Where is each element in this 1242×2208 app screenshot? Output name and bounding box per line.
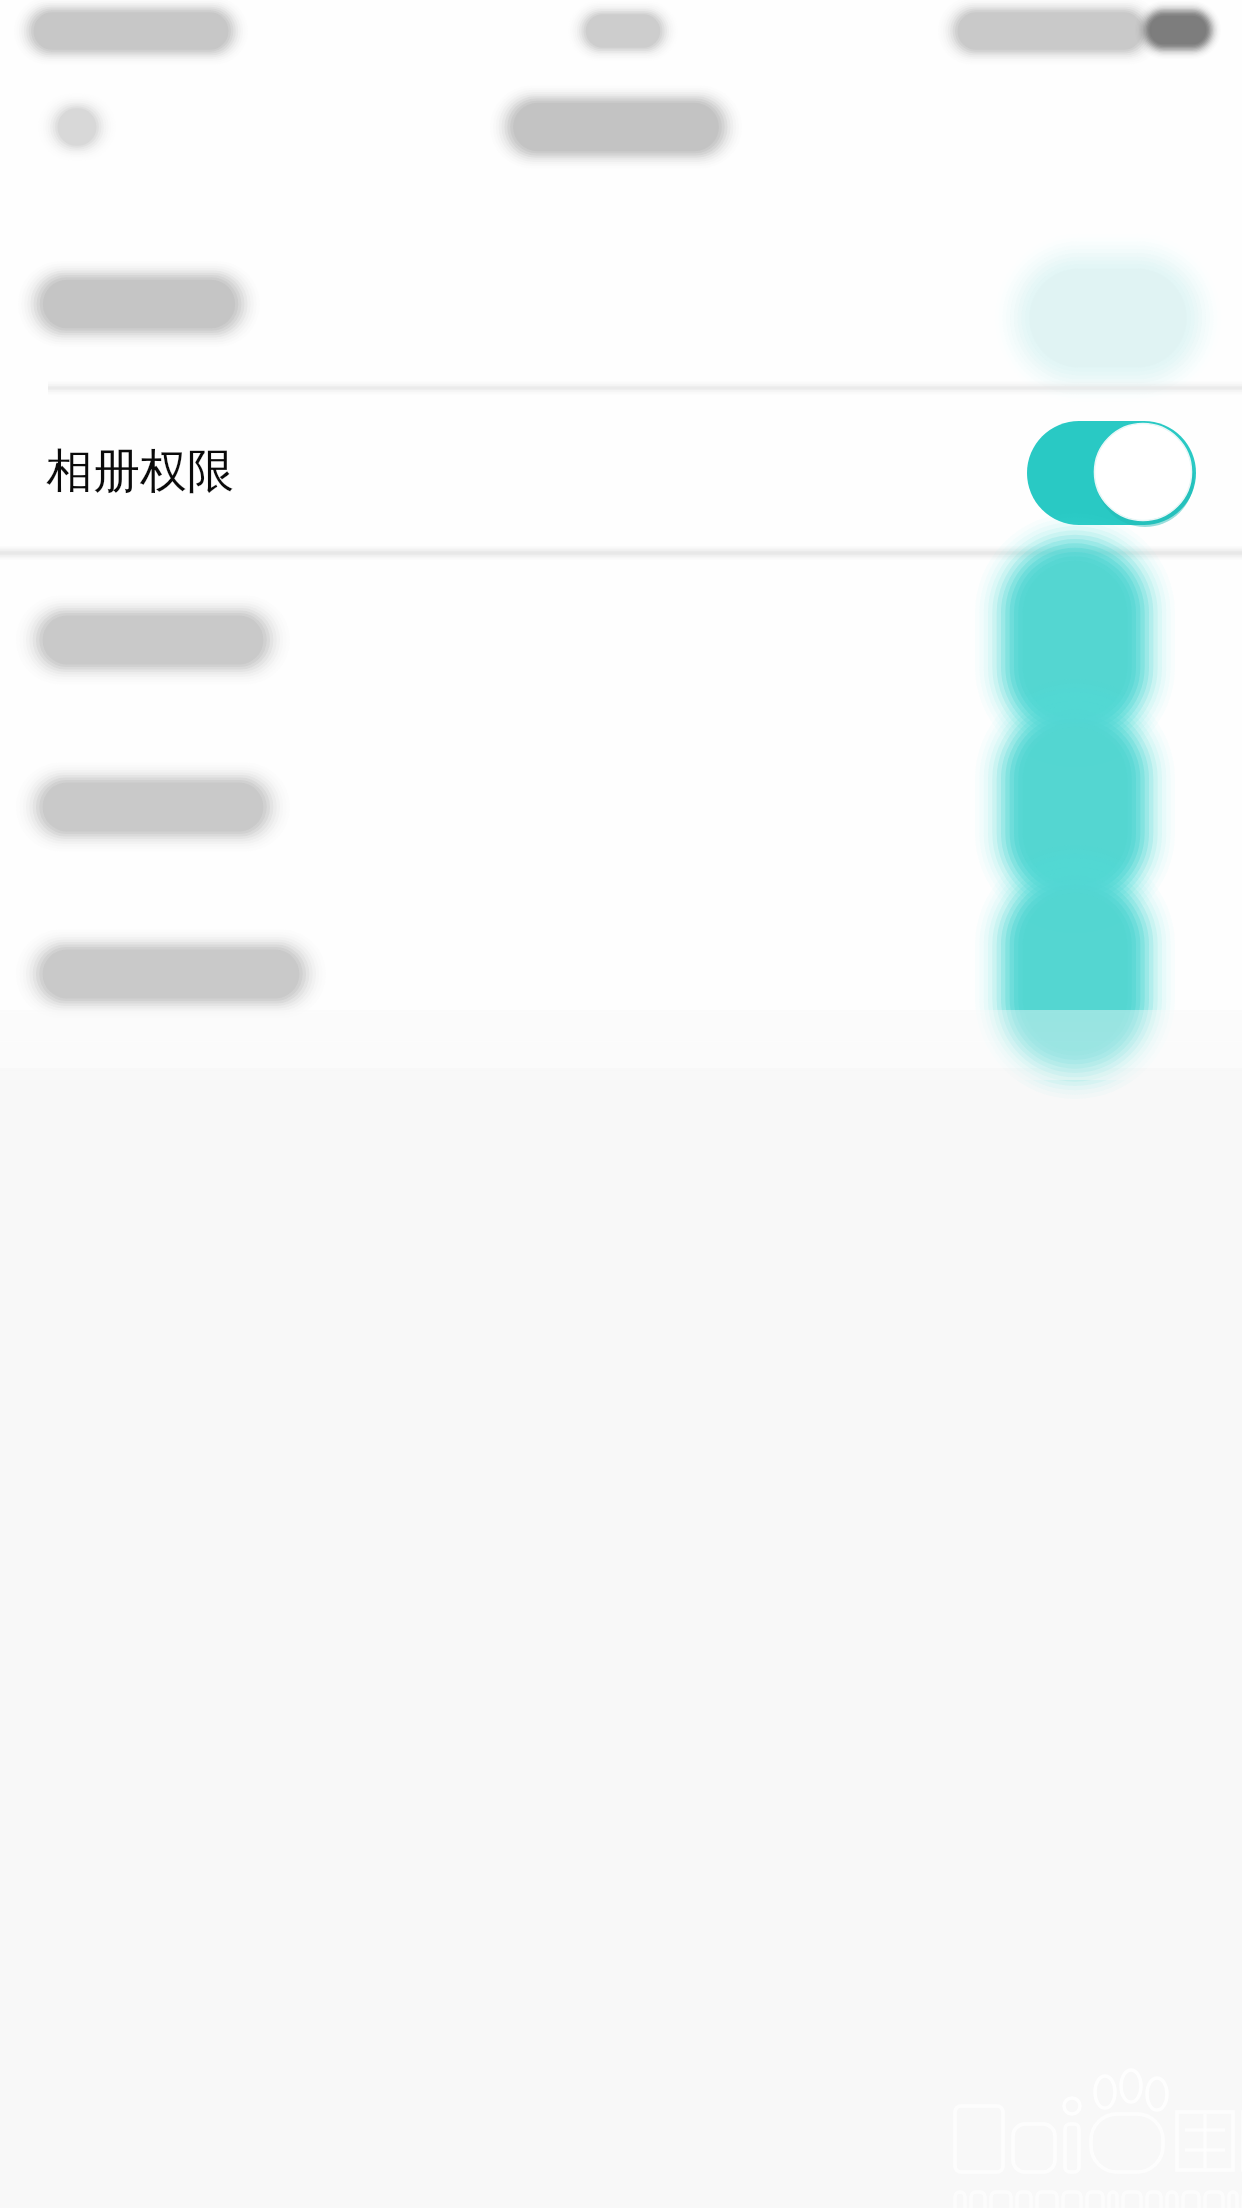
button[interactable] <box>0 888 1242 1064</box>
button[interactable]: 相册权限 <box>0 390 1242 552</box>
button[interactable]: 返回 <box>20 80 130 180</box>
button[interactable] <box>0 230 1242 390</box>
staticText: 相册权限 <box>46 442 234 501</box>
button[interactable]: 相册权限开关，已开启 <box>1026 419 1196 523</box>
button[interactable] <box>0 554 1242 722</box>
button[interactable] <box>0 722 1242 888</box>
